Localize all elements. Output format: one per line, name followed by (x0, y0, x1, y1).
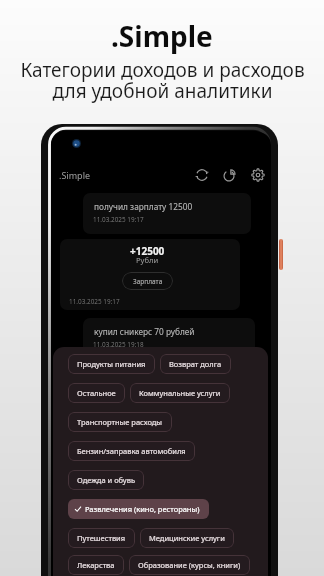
button[interactable]: Образование (курсы, книги) (129, 555, 250, 575)
staticText: Возврат долга (169, 359, 222, 369)
staticText: Зарплата (133, 277, 163, 286)
staticText: Лекарства (77, 560, 115, 570)
button[interactable]: Возврат долга (160, 354, 231, 374)
button[interactable]: купил сникерс 70 рублей (83, 318, 255, 359)
staticText: +12500 (130, 244, 165, 258)
button[interactable]: получил зарплату 12500 (83, 193, 251, 234)
staticText: 11.03.2025 19:17 (69, 297, 120, 306)
staticText: Путешествия (77, 533, 126, 543)
staticText: Остальное (77, 388, 116, 398)
staticText: Образование (курсы, книги) (138, 560, 241, 570)
button[interactable]: Транспортные расходы (68, 412, 172, 432)
staticText: Одежда и обувь (77, 475, 135, 485)
staticText: Коммунальные услуги (139, 388, 221, 398)
button[interactable]: Sync (192, 165, 212, 185)
button[interactable]: Остальное (68, 383, 125, 403)
button[interactable]: Лекарства (68, 555, 124, 575)
button[interactable]: Путешествия (68, 528, 135, 548)
button[interactable]: +12500 (60, 239, 240, 310)
button[interactable]: Бензин/заправка автомобиля (68, 441, 195, 461)
staticText: купил сникерс 70 рублей (94, 326, 195, 337)
staticText: Развлечения (кино, рестораны) (85, 504, 200, 514)
staticText: Транспортные расходы (77, 417, 163, 427)
staticText: 11.03.2025 19:18 (93, 340, 144, 349)
staticText: Рубли (136, 255, 159, 265)
staticText: Продукты питания (77, 359, 146, 369)
staticText: Медицинские услуги (149, 533, 225, 543)
staticText: .Simple (59, 169, 91, 181)
staticText: Бензин/заправка автомобиля (77, 446, 186, 456)
button[interactable]: Settings (248, 165, 268, 185)
staticText: 11.03.2025 19:17 (93, 215, 144, 224)
button[interactable]: Продукты питания (68, 354, 155, 374)
button[interactable]: Коммунальные услуги (130, 383, 230, 403)
staticText: получил зарплату 12500 (94, 201, 193, 212)
button[interactable]: Одежда и обувь (68, 470, 144, 490)
button[interactable]: Медицинские услуги (140, 528, 234, 548)
button[interactable]: Зарплата (122, 272, 173, 290)
staticText: Категории доходов и расходов для удобной… (20, 57, 305, 103)
button[interactable]: Statistics (220, 165, 240, 185)
staticText: .Simple (111, 17, 213, 55)
button[interactable]: Развлечения (кино, рестораны) (68, 499, 209, 519)
